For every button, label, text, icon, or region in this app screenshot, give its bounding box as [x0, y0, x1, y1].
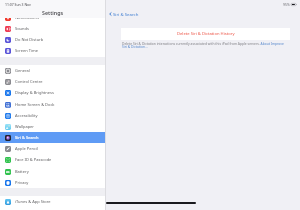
staticText: Settings — [42, 9, 64, 16]
button[interactable]: Home Screen & Dock — [0, 99, 105, 110]
button[interactable]: Face ID & Passcode — [0, 154, 105, 165]
staticText: Wallpaper — [15, 124, 35, 129]
button[interactable]: iTunes & App Store — [0, 196, 105, 207]
staticText: Siri & Search — [113, 11, 139, 17]
staticText: Accessibility — [15, 113, 38, 118]
button[interactable]: Wallpaper — [0, 121, 105, 132]
staticText: Apple Pencil — [15, 146, 38, 151]
button[interactable]: Do Not Disturb — [0, 34, 105, 45]
button[interactable]: Accessibility — [0, 110, 105, 121]
staticText: 95% — [283, 2, 290, 7]
staticText: General — [15, 68, 30, 73]
button[interactable]: Back — [109, 11, 139, 17]
button[interactable]: Display & Brightness — [0, 87, 105, 98]
staticText: Home Screen & Dock — [15, 102, 55, 107]
staticText: Delete Siri & Dictation History — [177, 31, 235, 37]
staticText: 11:07 Sun 3 Nov — [5, 2, 31, 7]
staticText: Control Centre — [15, 79, 43, 84]
staticText: Battery — [15, 169, 29, 174]
staticText: Sounds — [15, 26, 29, 31]
button[interactable]: Control Centre — [0, 76, 105, 87]
staticText: Siri & Search — [15, 135, 39, 140]
button[interactable]: Sounds — [0, 23, 105, 34]
staticText: Privacy — [15, 180, 29, 185]
button[interactable]: Screen Time — [0, 45, 105, 56]
button[interactable]: Battery — [0, 166, 105, 177]
button[interactable]: Privacy — [0, 177, 105, 188]
button[interactable]: Siri & Search — [0, 132, 105, 143]
staticText: Do Not Disturb — [15, 37, 44, 42]
button[interactable]: Delete Siri & Dictation History — [121, 28, 290, 40]
staticText: Screen Time — [15, 48, 38, 53]
button[interactable]: Notifications — [0, 12, 105, 23]
staticText: Face ID & Passcode — [15, 157, 52, 162]
other: Back — [109, 12, 112, 16]
staticText: Display & Brightness — [15, 90, 54, 95]
button[interactable]: Delete Siri & Dictation interactions cur… — [122, 41, 286, 49]
button[interactable]: General — [0, 65, 105, 76]
button[interactable]: Apple Pencil — [0, 143, 105, 154]
staticText: iTunes & App Store — [15, 199, 51, 204]
staticText: Notifications — [15, 15, 39, 20]
